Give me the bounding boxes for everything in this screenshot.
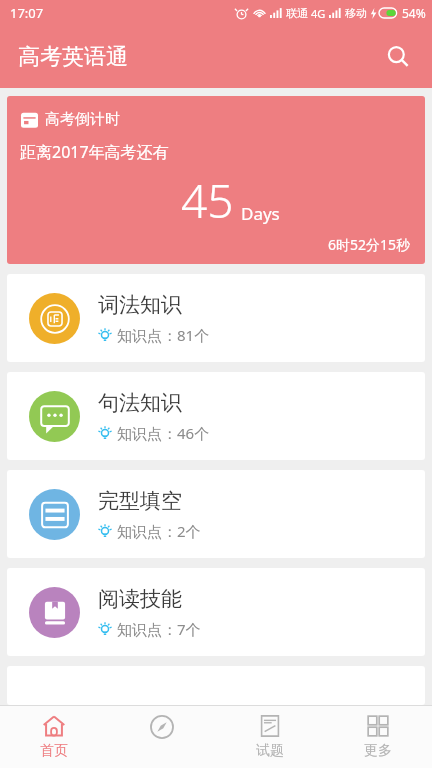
- staticText: 高考倒计时: [45, 110, 120, 129]
- staticText: 距离2017年高考还有: [20, 141, 169, 163]
- button[interactable]: 首页: [0, 706, 108, 768]
- staticText: 6时52分15秒: [328, 235, 411, 254]
- staticText: 首页: [40, 742, 68, 760]
- staticText: 完型填空: [98, 488, 182, 514]
- button[interactable]: 阅读技能: [7, 568, 425, 656]
- button[interactable]: 更多: [324, 706, 432, 768]
- button[interactable]: 句法知识: [7, 372, 425, 460]
- staticText: 阅读技能: [98, 586, 182, 612]
- staticText: 知识点：81个: [117, 325, 210, 345]
- staticText: 知识点：46个: [117, 423, 210, 443]
- staticText: 试题: [256, 742, 284, 760]
- button[interactable]: 高考倒计时: [7, 96, 425, 264]
- staticText: 45: [181, 169, 234, 232]
- staticText: 句法知识: [98, 390, 182, 416]
- staticText: 4G: [311, 6, 326, 21]
- button[interactable]: Discover: [108, 706, 216, 768]
- button[interactable]: 试题: [216, 706, 324, 768]
- button[interactable]: Search: [378, 37, 418, 77]
- staticText: 联通: [286, 6, 308, 20]
- staticText: 更多: [364, 742, 392, 760]
- staticText: 17:07: [10, 4, 44, 22]
- staticText: 知识点：2个: [117, 521, 201, 541]
- staticText: 词法知识: [98, 292, 182, 318]
- staticText: 高考英语通: [18, 43, 128, 71]
- staticText: Days: [241, 202, 280, 225]
- staticText: 54%: [402, 5, 426, 21]
- button[interactable]: 完型填空: [7, 470, 425, 558]
- staticText: 知识点：7个: [117, 619, 201, 639]
- button[interactable]: 词法知识: [7, 274, 425, 362]
- staticText: 移动: [345, 6, 367, 20]
